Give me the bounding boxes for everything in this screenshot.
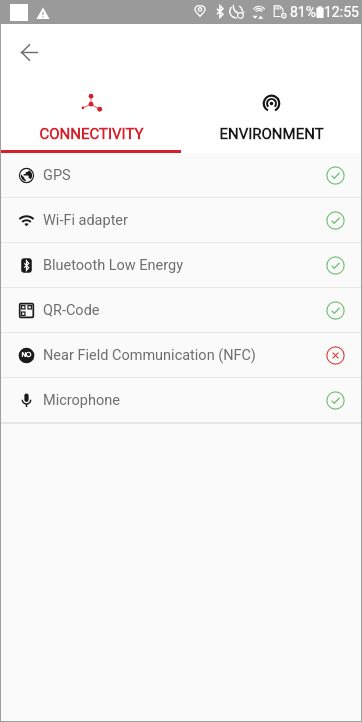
staticText: QR-Code <box>43 302 100 319</box>
button[interactable]: QR-Code <box>1 288 361 333</box>
button[interactable]: Back <box>9 32 49 72</box>
staticText: Wi-Fi adapter <box>43 212 128 229</box>
button[interactable]: Near Field Communication (NFC) <box>1 333 361 378</box>
button[interactable]: Wi-Fi adapter <box>1 198 361 243</box>
staticText: CONNECTIVITY <box>39 125 144 143</box>
button[interactable]: ENVIRONMENT <box>181 80 361 150</box>
staticText: Microphone <box>43 392 120 409</box>
staticText: Bluetooth Low Energy <box>43 257 184 274</box>
button[interactable]: CONNECTIVITY <box>1 80 181 150</box>
button[interactable]: Bluetooth Low Energy <box>1 243 361 288</box>
staticText: 12:55 <box>324 4 359 20</box>
staticText: GPS <box>43 167 71 184</box>
staticText: ENVIRONMENT <box>219 125 324 143</box>
button[interactable]: Microphone <box>1 378 361 423</box>
staticText: 81% <box>290 4 316 20</box>
staticText: Near Field Communication (NFC) <box>43 347 256 364</box>
button[interactable]: GPS <box>1 153 361 198</box>
